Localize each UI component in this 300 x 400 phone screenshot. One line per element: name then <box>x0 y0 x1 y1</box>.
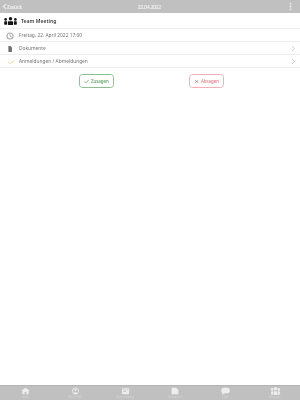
staticText: Zusagen <box>91 78 109 84</box>
staticText: Zurück <box>7 4 22 10</box>
button[interactable]: Freitag, 22. April 2022 17:00 <box>0 29 300 42</box>
staticText: Absagen <box>201 78 219 84</box>
staticText: Dokumente <box>168 395 183 399</box>
staticText: Gruppen <box>269 395 281 399</box>
button[interactable]: Absagen <box>189 74 224 88</box>
staticText: Dokumente <box>19 45 46 52</box>
staticText: Freitag, 22. April 2022 17:00 <box>19 32 83 39</box>
button[interactable]: Dokumente <box>150 386 200 399</box>
staticText: Team Meeting <box>21 18 57 25</box>
button[interactable]: Chat <box>200 386 250 399</box>
staticText: Start <box>22 395 29 399</box>
staticText: Anmeldungen / Abmeldungen <box>19 58 88 65</box>
button[interactable]: Anmeldungen / Abmeldungen <box>0 55 300 68</box>
staticText: Veranstaltung <box>116 395 134 399</box>
button[interactable]: Dokumente <box>0 42 300 55</box>
staticText: Chat <box>222 395 228 399</box>
button[interactable]: Zusagen <box>79 74 114 88</box>
button[interactable]: Mein Profil <box>50 386 100 399</box>
staticText: Mein Profil <box>68 395 82 399</box>
button[interactable]: Veranstaltung <box>100 386 150 399</box>
button[interactable]: Gruppen <box>250 386 300 399</box>
button[interactable]: Start <box>0 386 50 399</box>
button[interactable]: More options <box>280 0 300 13</box>
button[interactable]: Zurück <box>3 0 300 13</box>
staticText: 22.04.2022 <box>138 4 162 10</box>
